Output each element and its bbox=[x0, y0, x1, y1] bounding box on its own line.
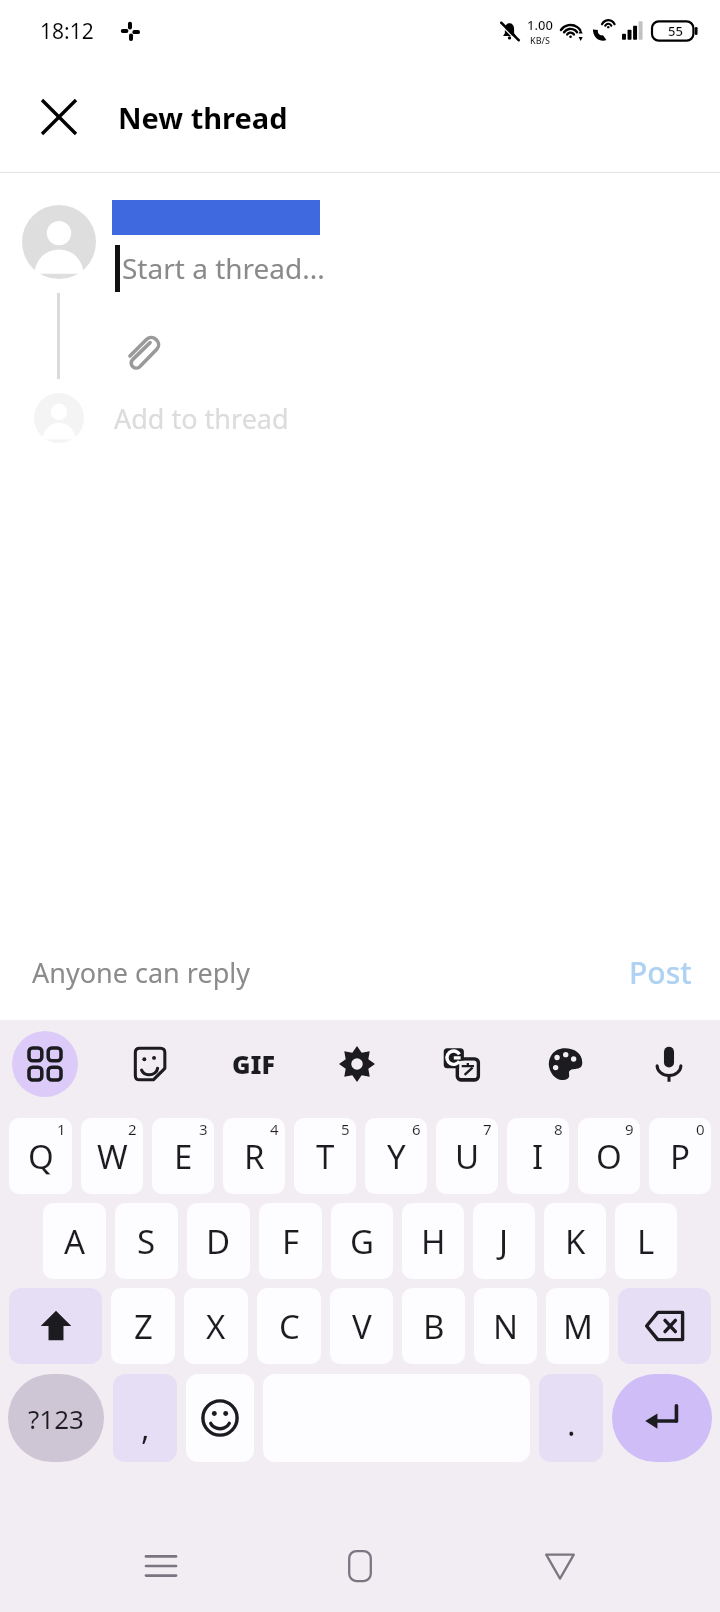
staticText: O bbox=[596, 1134, 622, 1179]
staticText: . bbox=[567, 1402, 576, 1446]
button[interactable]: S bbox=[115, 1203, 178, 1279]
staticText: 5 bbox=[341, 1119, 350, 1139]
button[interactable]: Settings bbox=[324, 1031, 390, 1097]
staticText: I bbox=[532, 1134, 544, 1179]
staticText: 0 bbox=[696, 1119, 705, 1139]
staticText: 18:12 bbox=[40, 17, 94, 46]
staticText: ?123 bbox=[28, 1401, 84, 1436]
staticText: KB/S bbox=[530, 34, 550, 46]
button[interactable]: X bbox=[184, 1288, 248, 1364]
staticText: K bbox=[565, 1219, 586, 1264]
button[interactable]: ?123 bbox=[8, 1374, 104, 1462]
button[interactable]: Backspace bbox=[618, 1288, 711, 1364]
staticText: GIF bbox=[232, 1047, 275, 1081]
button[interactable]: Stickers bbox=[116, 1031, 182, 1097]
button[interactable]: D bbox=[187, 1203, 250, 1279]
staticText: S bbox=[137, 1219, 156, 1264]
staticText: V bbox=[352, 1304, 372, 1349]
staticText: P bbox=[670, 1134, 690, 1179]
button[interactable]: N bbox=[474, 1288, 537, 1364]
button[interactable]: Y bbox=[365, 1118, 427, 1194]
button[interactable]: V bbox=[330, 1288, 393, 1364]
button[interactable]: GIF bbox=[220, 1031, 286, 1097]
staticText: Start a thread... bbox=[122, 249, 325, 287]
button[interactable]: Back bbox=[521, 1527, 599, 1605]
button[interactable]: Anyone can reply bbox=[32, 954, 250, 991]
staticText: B bbox=[423, 1304, 445, 1349]
button[interactable]: Enter bbox=[612, 1374, 712, 1462]
staticText: W bbox=[97, 1134, 128, 1179]
staticText: D bbox=[206, 1219, 231, 1264]
button[interactable]: Attach file bbox=[108, 319, 172, 383]
button[interactable]: K bbox=[544, 1203, 606, 1279]
staticText: E bbox=[174, 1134, 193, 1179]
staticText: 4 bbox=[270, 1119, 279, 1139]
staticText: 6 bbox=[412, 1119, 421, 1139]
staticText: M bbox=[563, 1304, 593, 1349]
staticText: 3 bbox=[199, 1119, 208, 1139]
button[interactable]: F bbox=[259, 1203, 322, 1279]
staticText: Add to thread bbox=[114, 400, 289, 437]
staticText: N bbox=[493, 1304, 519, 1349]
button[interactable]: Keyboard apps bbox=[12, 1031, 78, 1097]
button[interactable]: U bbox=[436, 1118, 498, 1194]
button[interactable]: Comma bbox=[113, 1374, 177, 1462]
button[interactable]: W bbox=[81, 1118, 143, 1194]
button[interactable]: R bbox=[223, 1118, 285, 1194]
staticText: R bbox=[244, 1134, 265, 1179]
button[interactable]: I bbox=[507, 1118, 569, 1194]
staticText: H bbox=[421, 1219, 446, 1264]
staticText: 2 bbox=[128, 1119, 137, 1139]
staticText: Q bbox=[28, 1134, 54, 1179]
button[interactable]: Q bbox=[9, 1118, 72, 1194]
button[interactable]: Translate bbox=[428, 1031, 494, 1097]
staticText: T bbox=[316, 1134, 335, 1179]
staticText: X bbox=[206, 1304, 226, 1349]
button[interactable]: Recent apps bbox=[122, 1527, 200, 1605]
button[interactable]: Post bbox=[629, 952, 692, 993]
staticText: 9 bbox=[625, 1119, 634, 1139]
button[interactable]: Emoji bbox=[186, 1374, 254, 1462]
button[interactable]: H bbox=[402, 1203, 464, 1279]
staticText: G bbox=[350, 1219, 375, 1264]
button[interactable]: Z bbox=[111, 1288, 175, 1364]
staticText: F bbox=[282, 1219, 300, 1264]
button[interactable]: B bbox=[402, 1288, 465, 1364]
button[interactable]: Theme bbox=[532, 1031, 598, 1097]
staticText: 55 bbox=[668, 22, 683, 40]
staticText: U bbox=[455, 1134, 480, 1179]
button[interactable]: J bbox=[473, 1203, 535, 1279]
button[interactable]: E bbox=[152, 1118, 214, 1194]
staticText: J bbox=[499, 1219, 509, 1264]
button[interactable]: G bbox=[331, 1203, 393, 1279]
staticText: A bbox=[64, 1219, 86, 1264]
button[interactable]: Period bbox=[539, 1374, 603, 1462]
staticText: C bbox=[279, 1304, 300, 1349]
staticText: 8 bbox=[554, 1119, 563, 1139]
button[interactable]: A bbox=[43, 1203, 106, 1279]
staticText: 7 bbox=[483, 1119, 492, 1139]
button[interactable]: P bbox=[649, 1118, 711, 1194]
button[interactable]: L bbox=[615, 1203, 677, 1279]
button[interactable]: Shift bbox=[9, 1288, 102, 1364]
staticText: New thread bbox=[118, 98, 288, 137]
button[interactable]: T bbox=[294, 1118, 356, 1194]
button[interactable]: C bbox=[257, 1288, 321, 1364]
staticText: 1 bbox=[57, 1119, 66, 1139]
button[interactable]: Add to thread bbox=[0, 385, 720, 451]
button[interactable]: Close bbox=[22, 80, 96, 154]
staticText: Z bbox=[134, 1304, 153, 1349]
staticText: 1.00 bbox=[527, 16, 553, 34]
staticText: L bbox=[637, 1219, 655, 1264]
button[interactable]: M bbox=[546, 1288, 609, 1364]
button[interactable]: Home bbox=[321, 1527, 399, 1605]
button[interactable]: Voice input bbox=[636, 1031, 702, 1097]
staticText: , bbox=[141, 1406, 150, 1450]
staticText: Y bbox=[387, 1134, 406, 1179]
button[interactable]: O bbox=[578, 1118, 640, 1194]
